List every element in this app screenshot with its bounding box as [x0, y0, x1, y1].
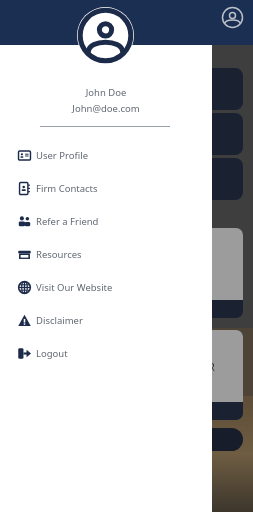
- button[interactable]: Disclaimer: [0, 304, 212, 337]
- button[interactable]: [148, 300, 243, 318]
- button[interactable]: 3: [148, 228, 243, 300]
- button[interactable]: [148, 402, 243, 420]
- button[interactable]: User Profile: [0, 139, 212, 172]
- button[interactable]: [148, 158, 243, 200]
- button[interactable]: Account: [221, 6, 244, 29]
- button[interactable]: Refer a Friend: [0, 205, 212, 238]
- staticText: John@doe.com: [0, 102, 212, 115]
- staticText: Resources: [36, 248, 82, 261]
- staticText: Logout: [36, 347, 68, 360]
- button[interactable]: Us: [176, 428, 243, 451]
- staticText: Refer a Friend: [36, 215, 99, 228]
- button[interactable]: Visit Our Website: [0, 271, 212, 304]
- button[interactable]: Firm Contacts: [0, 172, 212, 205]
- button[interactable]: Resources: [0, 238, 212, 271]
- staticText: Disclaimer: [36, 314, 83, 327]
- staticText: R: [208, 359, 215, 374]
- button[interactable]: R: [148, 330, 243, 402]
- staticText: Visit Our Website: [36, 281, 113, 294]
- button[interactable]: [148, 68, 243, 110]
- staticText: John Doe: [0, 86, 212, 99]
- button[interactable]: [148, 113, 243, 155]
- staticText: User Profile: [36, 149, 89, 162]
- button[interactable]: Logout: [0, 337, 212, 370]
- staticText: Firm Contacts: [36, 182, 98, 195]
